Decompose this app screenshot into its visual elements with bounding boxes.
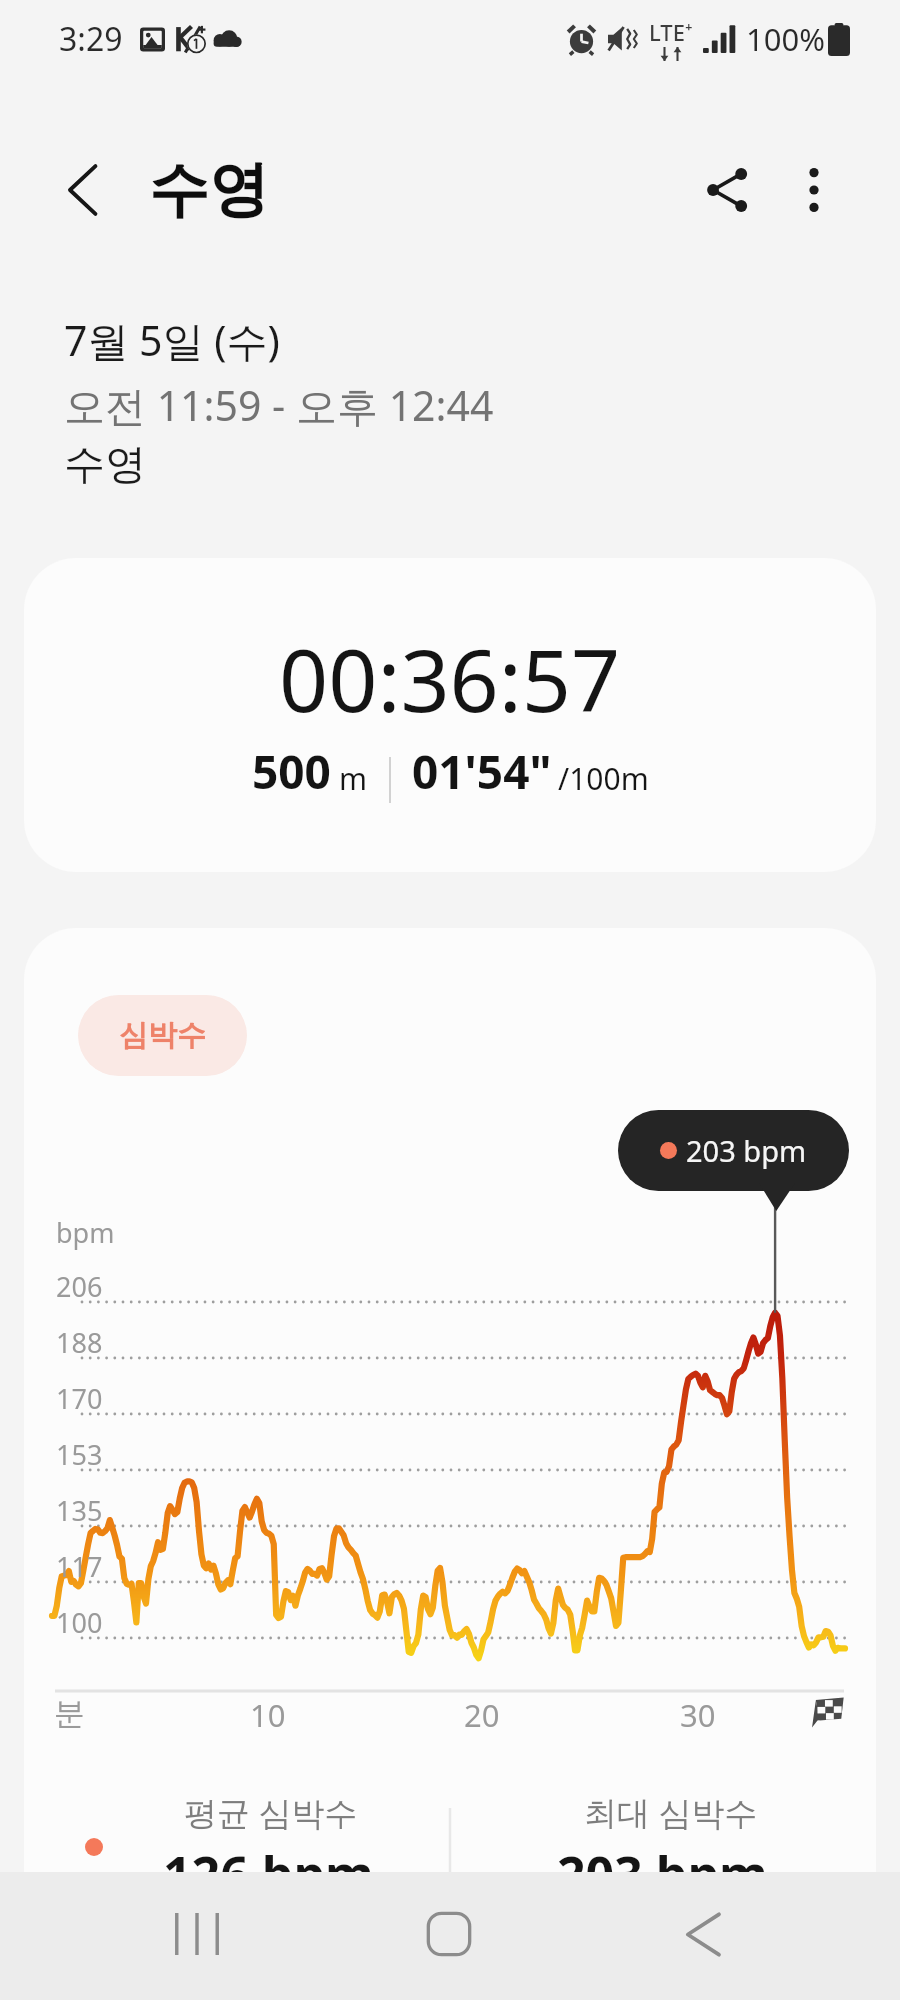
button[interactable]: Back xyxy=(658,1889,748,1979)
staticText: 20 xyxy=(464,1694,500,1736)
button[interactable]: 심박수 xyxy=(78,995,247,1076)
staticText: 100 xyxy=(56,1604,103,1641)
staticText: 203 bpm xyxy=(686,1131,807,1170)
button[interactable]: More options xyxy=(771,147,857,233)
staticText: 30 xyxy=(680,1694,716,1736)
staticText: 00:36:57 xyxy=(279,620,621,737)
staticText: 100% xyxy=(746,18,825,60)
staticText: 심박수 xyxy=(119,1017,206,1054)
staticText: LTE⁺ xyxy=(649,17,693,47)
staticText: 188 xyxy=(56,1324,103,1361)
button[interactable]: Share xyxy=(685,147,771,233)
staticText: 3:29 xyxy=(59,17,123,61)
staticText: 오전 11:59 - 오후 12:44 xyxy=(64,377,494,433)
staticText: 126 bpm xyxy=(163,1840,374,1908)
button[interactable]: 00:36:57 xyxy=(24,558,876,872)
staticText: 평균 심박수 xyxy=(184,1790,358,1835)
staticText: 최대 심박수 xyxy=(584,1790,758,1835)
button[interactable]: Back xyxy=(48,154,120,226)
button[interactable]: Home xyxy=(404,1889,494,1979)
staticText: 분 xyxy=(54,1694,85,1733)
staticText: 153 xyxy=(56,1436,103,1473)
staticText: 500 xyxy=(252,740,331,803)
staticText: 170 xyxy=(56,1380,103,1417)
staticText: 수영 xyxy=(64,439,146,491)
button[interactable]: Recents xyxy=(152,1889,242,1979)
staticText: bpm xyxy=(56,1214,115,1251)
staticText: 01'54" xyxy=(412,740,552,803)
staticText: 7월 5일 (수) xyxy=(64,312,280,368)
staticText: 203 bpm xyxy=(557,1840,768,1908)
staticText: m xyxy=(339,758,368,799)
staticText: 135 xyxy=(56,1492,103,1529)
staticText: 206 xyxy=(56,1268,103,1305)
staticText: 수영 xyxy=(149,152,269,228)
staticText: /100m xyxy=(558,758,649,799)
staticText: 10 xyxy=(250,1694,286,1736)
staticText: 117 xyxy=(56,1548,103,1585)
